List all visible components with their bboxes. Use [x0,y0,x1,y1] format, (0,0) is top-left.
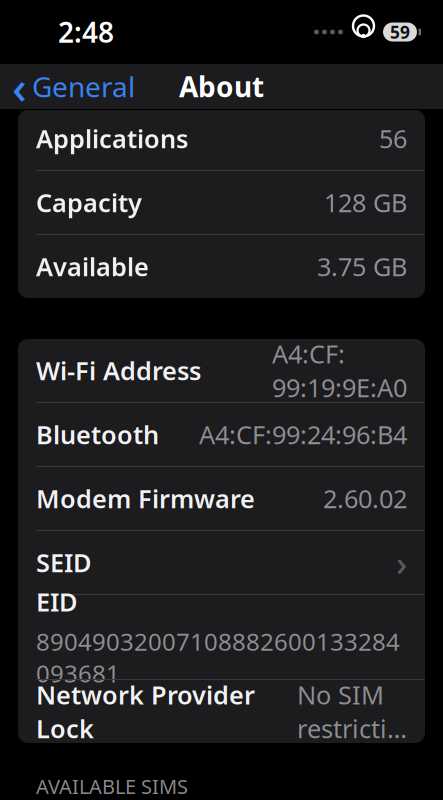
button[interactable]: Applications [18,107,425,170]
staticText: ‹ [12,56,27,117]
staticText: 2.60.02 [323,482,407,515]
button[interactable]: Modem Firmware [18,467,425,530]
staticText: EID [36,585,78,618]
button[interactable]: Bluetooth [18,403,425,466]
staticText: 59 [390,20,410,43]
staticText: 128 GB [324,186,407,219]
staticText: A4:CF:99:19:9E:A0 [272,337,407,404]
staticText: › [396,539,407,585]
button[interactable]: Network Provider Lock [18,680,425,743]
staticText: General [32,68,135,105]
button[interactable]: Wi-Fi Address [18,339,425,402]
staticText: Modem Firmware [36,482,255,515]
staticText: No SIM restricti… [297,678,407,745]
staticText: Wi-Fi Address [36,354,201,387]
button[interactable]: EID [18,595,425,679]
staticText: 56 [379,122,407,155]
button[interactable]: Capacity [18,171,425,234]
button[interactable]: SEID [18,531,425,594]
staticText: SEID [36,546,92,579]
staticText: Network Provider Lock [36,678,255,745]
staticText: AVAILABLE SIMS [36,773,188,800]
staticText: 3.75 GB [317,250,407,283]
button[interactable]: ‹ [0,64,147,108]
staticText: 89049032007108882600133284093681 [36,625,400,689]
staticText: Applications [36,122,188,155]
staticText: Bluetooth [36,418,159,451]
button[interactable]: Available [18,235,425,298]
staticText: About [179,68,264,105]
staticText: Available [36,250,149,283]
staticText: A4:CF:99:24:96:B4 [199,418,407,451]
staticText: Capacity [36,186,142,219]
staticText: 2:48 [58,13,114,51]
